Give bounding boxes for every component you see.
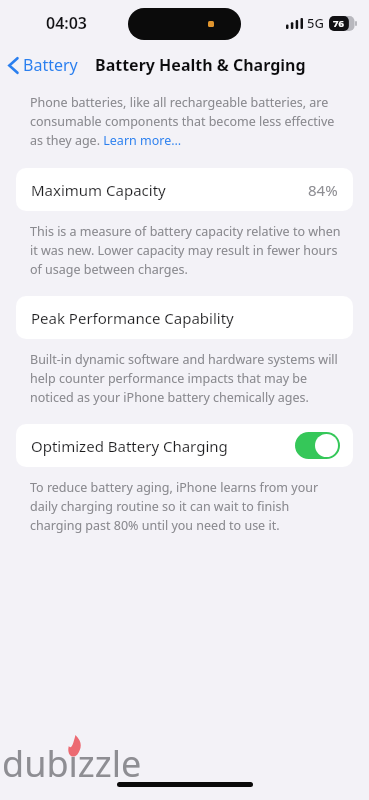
staticText: 5G xyxy=(307,14,324,32)
staticText: Maximum Capacity xyxy=(31,180,166,200)
staticText: Built-in dynamic software and hardware s… xyxy=(30,351,343,406)
staticText: Peak Performance Capability xyxy=(31,308,234,328)
button[interactable]: Peak Performance Capability xyxy=(16,296,353,339)
staticText: 76 xyxy=(333,17,344,30)
staticText: Battery xyxy=(23,54,78,76)
staticText: 04:03 xyxy=(46,12,88,34)
button[interactable]: Optimized Battery Charging, on xyxy=(295,432,340,459)
button[interactable]: Back to Battery xyxy=(0,50,84,80)
staticText: To reduce battery aging, iPhone learns f… xyxy=(30,479,343,534)
staticText: This is a measure of battery capacity re… xyxy=(30,223,343,278)
button[interactable]: Maximum Capacity xyxy=(16,168,353,211)
button[interactable]: Optimized Battery Charging xyxy=(16,424,353,467)
staticText: dubizzle xyxy=(2,739,142,788)
staticText: Optimized Battery Charging xyxy=(31,436,228,456)
staticText: Battery Health & Charging xyxy=(95,54,306,76)
staticText: Phone batteries, like all rechargeable b… xyxy=(30,94,347,149)
staticText: 84% xyxy=(308,180,338,200)
